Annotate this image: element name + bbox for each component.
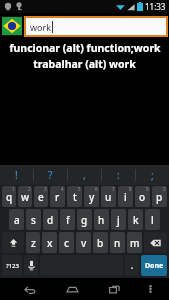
staticText: m — [130, 236, 140, 250]
staticText: 5 — [78, 186, 81, 192]
staticText: g — [81, 213, 88, 227]
button[interactable]: b — [93, 232, 108, 253]
button[interactable]: Language: Portuguese (Brazil) — [2, 14, 22, 38]
staticText: : — [117, 168, 120, 182]
button[interactable]: p — [152, 186, 167, 207]
staticText: d — [47, 213, 54, 227]
staticText: ? — [48, 168, 53, 182]
staticText: i — [124, 190, 127, 204]
staticText: , — [83, 168, 86, 182]
staticText: e — [38, 190, 44, 204]
button[interactable]: . — [125, 255, 139, 276]
staticText: p — [156, 190, 163, 204]
button[interactable]: w — [18, 186, 32, 207]
button[interactable]: j — [111, 209, 126, 230]
button[interactable]: More options — [139, 278, 161, 300]
staticText: s — [31, 213, 36, 227]
staticText: 9 — [146, 186, 149, 192]
staticText: 0 — [163, 186, 166, 192]
button[interactable]: o — [135, 186, 150, 207]
staticText: r — [55, 190, 60, 204]
staticText: 7 — [112, 186, 115, 192]
button[interactable]: work — [24, 16, 168, 37]
button[interactable]: z — [26, 232, 40, 253]
staticText: trabalhar (alt) work — [33, 57, 136, 71]
button[interactable]: Home — [58, 278, 86, 300]
staticText: z — [31, 236, 36, 250]
staticText: f — [66, 213, 70, 227]
button[interactable]: ! — [0, 165, 33, 185]
staticText: ; — [151, 168, 154, 182]
button[interactable]: Recent apps — [100, 278, 128, 300]
staticText: u — [105, 190, 112, 204]
staticText: ?123 — [6, 262, 19, 270]
staticText: 1 — [12, 186, 15, 192]
staticText: b — [97, 236, 104, 250]
button[interactable]: t — [67, 186, 82, 207]
button[interactable]: e — [34, 186, 48, 207]
button[interactable]: k — [128, 209, 143, 230]
button[interactable]: r — [50, 186, 65, 207]
button[interactable]: ?123 — [2, 255, 22, 276]
button[interactable]: v — [76, 232, 91, 253]
button[interactable]: c — [59, 232, 74, 253]
button[interactable]: f — [60, 209, 75, 230]
staticText: 3 — [44, 186, 47, 192]
staticText: v — [81, 236, 87, 250]
staticText: a — [14, 213, 20, 227]
staticText: j — [117, 213, 120, 227]
button[interactable]: n — [110, 232, 125, 253]
button[interactable]: ; — [136, 165, 169, 185]
button[interactable]: Shift — [2, 232, 24, 253]
button[interactable]: u — [101, 186, 116, 207]
staticText: work — [30, 21, 52, 33]
staticText: o — [139, 190, 146, 204]
staticText: 8 — [129, 186, 132, 192]
button[interactable]: l — [145, 209, 160, 230]
staticText: k — [133, 213, 139, 227]
button[interactable]: Done — [141, 255, 167, 276]
staticText: 2 — [28, 186, 31, 192]
staticText: ! — [15, 168, 18, 182]
staticText: 11:33 — [145, 1, 166, 12]
button[interactable]: d — [43, 209, 58, 230]
staticText: funcionar (alt) function;work — [9, 41, 161, 55]
button[interactable]: Voice input — [24, 255, 38, 276]
staticText: x — [47, 236, 53, 250]
staticText: y — [89, 190, 95, 204]
button[interactable]: q — [2, 186, 16, 207]
staticText: n — [114, 236, 121, 250]
button[interactable]: , — [68, 165, 101, 185]
button[interactable]: g — [77, 209, 92, 230]
button[interactable]: x — [42, 232, 57, 253]
button[interactable]: Back — [16, 278, 44, 300]
button[interactable]: a — [9, 209, 24, 230]
staticText: c — [64, 236, 69, 250]
staticText: t — [73, 190, 77, 204]
button[interactable]: : — [102, 165, 135, 185]
staticText: . — [131, 260, 134, 271]
button[interactable]: m — [127, 232, 142, 253]
button[interactable]: ? — [34, 165, 67, 185]
button[interactable]: i — [118, 186, 133, 207]
button[interactable]: y — [84, 186, 99, 207]
button[interactable]: Backspace — [144, 232, 167, 253]
staticText: h — [98, 213, 105, 227]
staticText: Done — [145, 261, 164, 271]
staticText: 6 — [95, 186, 98, 192]
staticText: q — [6, 190, 13, 204]
staticText: w — [21, 190, 30, 204]
staticText: l — [151, 213, 154, 227]
button[interactable]: h — [94, 209, 109, 230]
staticText: 4 — [61, 186, 64, 192]
button[interactable]: s — [26, 209, 41, 230]
